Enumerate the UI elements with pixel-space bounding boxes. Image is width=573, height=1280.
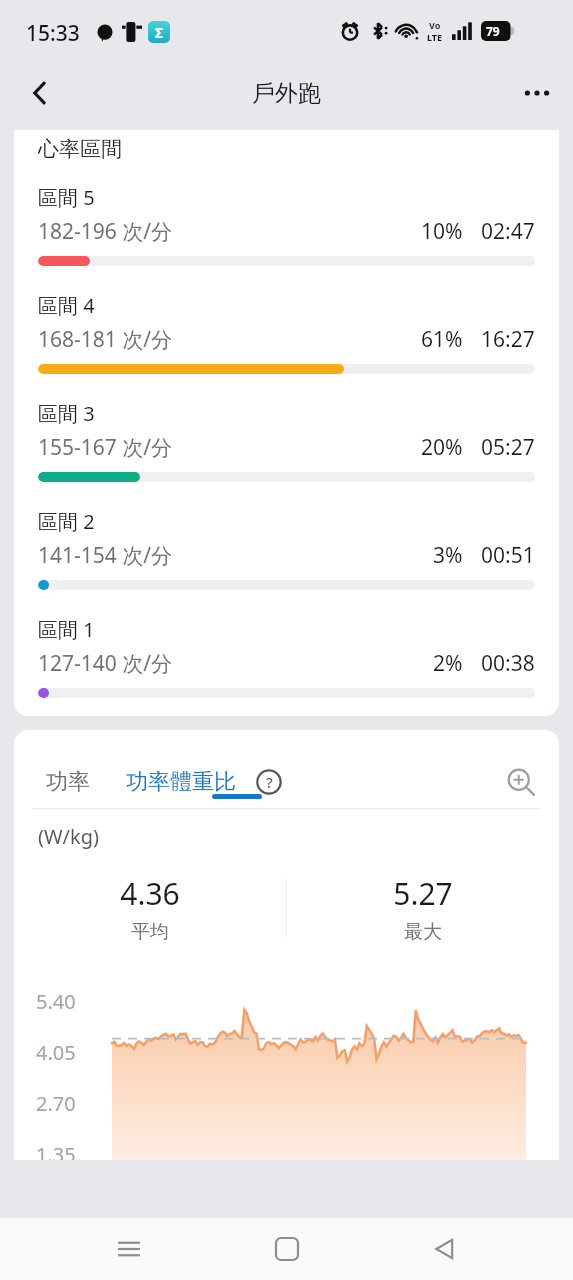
button[interactable]: Help	[252, 765, 286, 799]
button[interactable]: Recent apps	[100, 1220, 158, 1278]
staticText: 16:27	[481, 325, 535, 354]
staticText: 5.27	[393, 873, 453, 914]
button[interactable]: Back	[14, 67, 66, 119]
staticText: 141-154 次/分	[38, 541, 173, 570]
button[interactable]: Zoom chart	[499, 760, 543, 804]
staticText: 00:51	[481, 541, 535, 570]
staticText: Vo	[429, 19, 441, 31]
button[interactable]: Home	[258, 1220, 316, 1278]
button[interactable]: More options	[511, 67, 563, 119]
staticText: Σ	[155, 23, 164, 42]
staticText: 10%	[421, 217, 463, 246]
button[interactable]: 功率	[34, 762, 102, 802]
staticText: 4.36	[120, 873, 180, 914]
staticText: 區間 3	[38, 400, 95, 427]
staticText: 3%	[433, 541, 463, 570]
staticText: 155-167 次/分	[38, 433, 173, 462]
staticText: 功率	[46, 768, 90, 796]
button[interactable]: 區間 3	[38, 400, 535, 482]
staticText: 心率區間	[38, 136, 122, 162]
staticText: 127-140 次/分	[38, 649, 173, 678]
staticText: 168-181 次/分	[38, 325, 173, 354]
staticText: 1.35	[36, 1141, 76, 1160]
button[interactable]: 區間 5	[38, 184, 535, 266]
staticText: 00:38	[481, 649, 535, 678]
staticText: 功率體重比	[126, 768, 236, 796]
staticText: 平均	[131, 920, 169, 944]
staticText: 02:47	[481, 217, 535, 246]
staticText: 區間 5	[38, 184, 95, 211]
staticText: 區間 4	[38, 292, 95, 319]
staticText: 2.70	[36, 1090, 76, 1117]
button[interactable]: 區間 2	[38, 508, 535, 590]
staticText: 20%	[421, 433, 463, 462]
staticText: 05:27	[481, 433, 535, 462]
staticText: 182-196 次/分	[38, 217, 173, 246]
button[interactable]: Back	[415, 1220, 473, 1278]
staticText: 15:33	[26, 19, 80, 48]
staticText: 5.40	[36, 988, 76, 1015]
staticText: 區間 2	[38, 508, 95, 535]
staticText: (W/kg)	[38, 823, 100, 850]
staticText: 戶外跑	[252, 79, 321, 108]
button[interactable]: 區間 4	[38, 292, 535, 374]
button[interactable]: 功率體重比	[120, 762, 242, 802]
staticText: 2%	[433, 649, 463, 678]
button[interactable]: 區間 1	[38, 616, 535, 698]
staticText: ?	[266, 772, 273, 792]
staticText: 4.05	[36, 1039, 76, 1066]
staticText: LTE	[427, 31, 443, 43]
staticText: 區間 1	[38, 616, 95, 643]
staticText: 61%	[421, 325, 463, 354]
staticText: 79	[486, 23, 500, 39]
staticText: 最大	[404, 920, 442, 944]
